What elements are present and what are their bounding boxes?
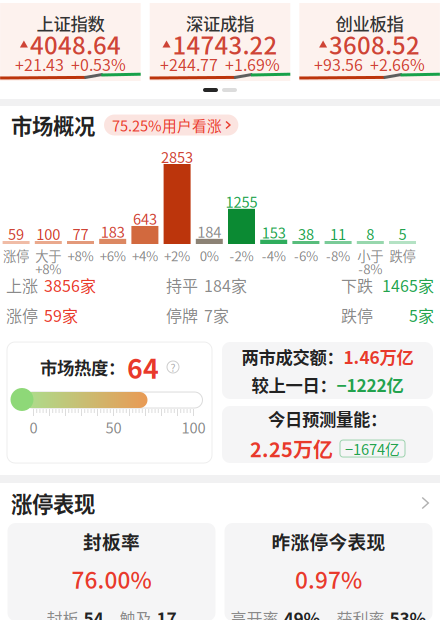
staticText: 38 <box>298 223 314 244</box>
staticText: 深证成指 <box>186 10 254 36</box>
staticText: -2% <box>229 246 253 265</box>
staticText: 17 <box>156 605 176 620</box>
staticText: +21.43 <box>15 52 64 76</box>
staticText: 跌停 <box>389 246 415 265</box>
staticText: 54 <box>83 605 103 620</box>
staticText: ? <box>170 359 175 375</box>
staticText: 7家 <box>204 303 229 327</box>
staticText: 11 <box>330 223 346 244</box>
staticText: 触及 <box>119 606 151 620</box>
staticText: 封板 <box>46 606 78 620</box>
staticText: 上涨 <box>6 273 38 296</box>
button[interactable]: 昨涨停今表现 <box>224 523 432 620</box>
staticText: 59家 <box>44 303 78 327</box>
staticText: 今日预测量能： <box>268 406 387 431</box>
staticText: 14743.22 <box>172 27 277 61</box>
staticText: 5 <box>398 223 406 244</box>
staticText: +93.56 <box>314 52 363 76</box>
staticText: 4048.64 <box>30 27 121 61</box>
staticText: −1674亿 <box>345 438 400 459</box>
staticText: 50 <box>105 416 121 438</box>
staticText: 两市成交额： <box>241 344 343 369</box>
staticText: 64 <box>127 348 159 386</box>
staticText: 下跌 <box>341 273 373 296</box>
staticText: 1465家 <box>382 273 434 296</box>
staticText: 大于 <box>35 246 61 265</box>
staticText: 5家 <box>409 303 434 327</box>
staticText: 跌停 <box>341 303 373 327</box>
button[interactable]: 封板率 <box>7 523 215 620</box>
staticText: 较上一日： <box>251 372 336 397</box>
staticText: +8% <box>67 246 93 265</box>
button[interactable]: 创业板指 <box>299 3 440 81</box>
staticText: 49% <box>283 605 320 620</box>
staticText: 3856家 <box>44 273 96 296</box>
staticText: 获利率 <box>336 606 384 620</box>
staticText: 涨停表现 <box>11 488 95 518</box>
staticText: 0 <box>29 416 37 438</box>
staticText: +0.53% <box>71 52 126 76</box>
staticText: 0.97% <box>295 563 362 595</box>
staticText: +1.69% <box>225 52 280 76</box>
staticText: 0% <box>200 246 219 265</box>
staticText: 1255 <box>225 191 257 212</box>
staticText: 停牌 <box>166 303 198 327</box>
staticText: 市场概况 <box>11 110 95 140</box>
staticText: 643 <box>133 208 157 229</box>
button[interactable]: 75.25%用户看涨 <box>104 114 238 135</box>
button[interactable]: 深证成指 <box>150 3 290 81</box>
staticText: +2.66% <box>370 52 425 76</box>
staticText: 昨涨停今表现 <box>271 527 385 554</box>
staticText: 183 <box>101 221 125 242</box>
staticText: −1222亿 <box>336 372 403 397</box>
staticText: +8% <box>35 259 61 278</box>
staticText: 76.00% <box>71 563 151 595</box>
staticText: 184家 <box>204 273 247 296</box>
staticText: 涨停 <box>6 303 38 327</box>
staticText: 77 <box>72 223 88 244</box>
staticText: +6% <box>100 246 126 265</box>
staticText: 100 <box>36 223 60 244</box>
staticText: 184 <box>197 221 221 242</box>
staticText: 上证指数 <box>36 10 104 36</box>
staticText: 75.25%用户看涨 <box>112 114 222 136</box>
staticText: -8% <box>326 246 350 265</box>
staticText: -8% <box>358 259 382 278</box>
staticText: 1.46万亿 <box>343 344 413 369</box>
staticText: 8 <box>366 223 374 244</box>
staticText: 创业板指 <box>336 10 404 36</box>
staticText: +2% <box>164 246 190 265</box>
staticText: 59 <box>8 223 24 244</box>
staticText: +4% <box>132 246 158 265</box>
staticText: 53% <box>389 605 426 620</box>
staticText: 100 <box>181 416 205 438</box>
button[interactable]: 上证指数 <box>0 3 141 81</box>
staticText: 涨停 <box>3 246 29 265</box>
staticText: 市场热度： <box>40 354 125 380</box>
staticText: 2.25万亿 <box>250 434 333 463</box>
staticText: 高开率 <box>230 606 278 620</box>
staticText: 小于 <box>357 246 383 265</box>
staticText: 持平 <box>166 273 198 296</box>
staticText: -4% <box>262 246 286 265</box>
button[interactable]: 涨停表现 <box>0 483 440 523</box>
staticText: 153 <box>262 222 286 243</box>
staticText: 封板率 <box>83 527 140 554</box>
staticText: +244.77 <box>160 52 218 76</box>
staticText: -6% <box>294 246 318 265</box>
staticText: 2853 <box>161 146 193 167</box>
staticText: 3608.52 <box>329 27 420 61</box>
